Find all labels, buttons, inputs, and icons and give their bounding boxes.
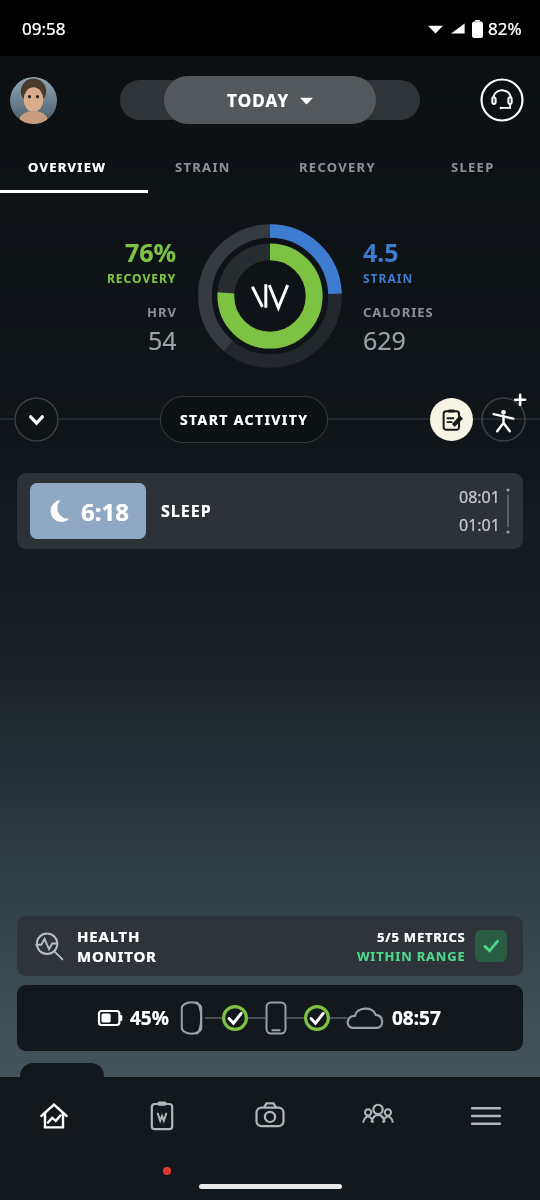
- staticText: SLEEP: [451, 158, 495, 176]
- staticText: 82%: [488, 17, 522, 40]
- staticText: SLEEP: [161, 500, 212, 522]
- staticText: 08:57: [392, 1005, 441, 1031]
- staticText: 08:01: [459, 486, 500, 508]
- staticText: 76%: [125, 235, 177, 269]
- staticText: RECOVERY: [299, 158, 376, 176]
- button[interactable]: Support: [480, 78, 524, 122]
- staticText: 54: [148, 323, 177, 357]
- button[interactable]: Community: [324, 1077, 432, 1155]
- button[interactable]: 45%: [17, 985, 523, 1051]
- button[interactable]: RECOVERY: [270, 144, 405, 190]
- staticText: MONITOR: [77, 946, 157, 966]
- staticText: 09:58: [22, 17, 66, 40]
- staticText: WITHIN RANGE: [357, 947, 466, 965]
- button[interactable]: Recovery and strain rings: [197, 223, 343, 369]
- staticText: STRAIN: [175, 158, 231, 176]
- staticText: 4.5: [363, 235, 399, 269]
- staticText: 6:18: [81, 495, 129, 528]
- staticText: 5/5 METRICS: [377, 928, 466, 946]
- button[interactable]: HEALTH: [17, 916, 523, 976]
- button[interactable]: Journal: [430, 398, 473, 441]
- staticText: TODAY: [227, 89, 290, 112]
- button[interactable]: Profile: [10, 77, 57, 124]
- button[interactable]: Journal: [108, 1077, 216, 1155]
- staticText: HRV: [147, 303, 177, 321]
- button[interactable]: TODAY: [164, 76, 376, 124]
- staticText: 45%: [130, 1005, 169, 1031]
- staticText: CALORIES: [363, 303, 434, 321]
- staticText: STRAIN: [363, 270, 414, 286]
- staticText: 629: [363, 323, 406, 357]
- staticText: OVERVIEW: [28, 158, 107, 176]
- staticText: START ACTIVITY: [180, 410, 309, 429]
- button[interactable]: OVERVIEW: [0, 144, 135, 190]
- staticText: HEALTH: [77, 926, 141, 946]
- button[interactable]: Menu: [432, 1077, 540, 1155]
- button[interactable]: Camera: [216, 1077, 324, 1155]
- button[interactable]: SLEEP: [405, 144, 540, 190]
- staticText: 01:01: [459, 514, 500, 536]
- button[interactable]: START ACTIVITY: [160, 396, 328, 443]
- button[interactable]: Expand: [14, 397, 59, 442]
- button[interactable]: STRAIN: [135, 144, 270, 190]
- button[interactable]: Add activity: [481, 397, 526, 442]
- button[interactable]: Home: [0, 1077, 108, 1155]
- button[interactable]: 6:18: [17, 473, 523, 549]
- staticText: RECOVERY: [107, 270, 177, 286]
